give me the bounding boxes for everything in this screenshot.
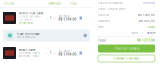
staticText: Continuar Comprando [113, 57, 140, 60]
staticText: R$ 1.704,00 [58, 53, 76, 56]
button[interactable]: + [53, 51, 55, 55]
button[interactable]: − [46, 16, 48, 20]
staticText: + [53, 51, 55, 55]
staticText: Grátis [148, 25, 155, 29]
staticText: Ultra 32" LED 165Hz [18, 15, 40, 18]
staticText: Produto [4, 2, 15, 5]
staticText: R$ 1.704,00 [58, 18, 76, 21]
staticText: Teclado Gamer [18, 48, 35, 51]
staticText: Switch Red · USB-C [18, 55, 39, 57]
staticText: R$ 1.373,90 [137, 39, 155, 42]
staticText: Apenas 1 código por pedido [98, 8, 125, 10]
button[interactable]: Continuar Comprando [98, 55, 155, 62]
staticText: Plano de Proteção [17, 32, 40, 35]
staticText: 1 [50, 16, 51, 20]
staticText: Veja os beneficios [17, 36, 35, 38]
staticText: Entrega rápida [18, 21, 32, 24]
staticText: Subtotal [98, 13, 109, 17]
staticText: Cor: grafite [18, 18, 31, 21]
staticText: − [46, 16, 48, 20]
staticText: Arco Mecan. ABNT2 [18, 52, 39, 54]
staticText: Frete [98, 25, 103, 29]
staticText: Descontos [98, 19, 110, 23]
staticText: 1 [50, 51, 51, 55]
button[interactable]: Plano de Proteção [3, 29, 90, 41]
staticText: R$ 1.999,00 [58, 15, 69, 17]
staticText: Monitor Pixel Gamer [18, 12, 43, 15]
button[interactable]: Finalizar Compra [98, 44, 155, 52]
staticText: Total [98, 39, 106, 42]
staticText: -R$ 400,00 [138, 19, 155, 23]
staticText: Preço [70, 2, 77, 5]
staticText: Cupom de desconto [98, 1, 123, 5]
button[interactable]: Remover item [79, 16, 82, 19]
staticText: R$ 1.999,00 [58, 50, 69, 52]
staticText: R$ 69,90 [147, 32, 155, 34]
staticText: − [46, 51, 48, 55]
staticText: APLICAR [143, 1, 155, 5]
staticText: Seguros [131, 32, 138, 34]
staticText: + [53, 16, 55, 20]
staticText: R$ 1.704,00 [138, 13, 155, 17]
button[interactable]: + [53, 16, 55, 20]
button[interactable]: APLICAR [143, 1, 155, 5]
button[interactable]: − [46, 51, 48, 55]
staticText: Quantidade [48, 2, 61, 5]
staticText: Finalizar Compra [113, 47, 139, 50]
